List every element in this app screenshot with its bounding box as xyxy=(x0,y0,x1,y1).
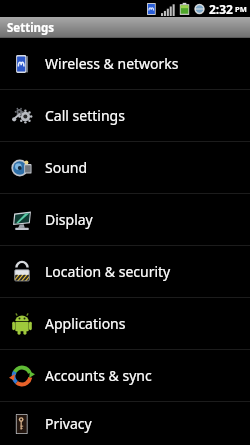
button[interactable]: Accounts & sync xyxy=(0,350,250,401)
button[interactable]: Applications xyxy=(0,298,250,349)
staticText: Display xyxy=(45,210,93,229)
staticText: Settings xyxy=(7,20,55,36)
staticText: Location & security xyxy=(45,262,171,281)
staticText: 2:32 xyxy=(209,1,233,17)
staticText: Applications xyxy=(45,314,126,333)
button[interactable]: Sound xyxy=(0,142,250,193)
staticText: Call settings xyxy=(45,106,125,125)
button[interactable]: Privacy xyxy=(0,402,250,445)
staticText: PM xyxy=(235,4,247,14)
button[interactable]: Display xyxy=(0,194,250,245)
staticText: Accounts & sync xyxy=(45,366,152,385)
staticText: Sound xyxy=(45,158,88,177)
button[interactable]: Wireless & networks xyxy=(0,38,250,89)
staticText: Privacy xyxy=(45,414,92,433)
button[interactable]: Call settings xyxy=(0,90,250,141)
button[interactable]: Location & security xyxy=(0,246,250,297)
staticText: Wireless & networks xyxy=(45,54,179,73)
